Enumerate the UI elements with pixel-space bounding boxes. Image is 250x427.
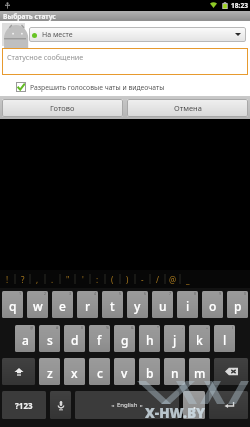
staticText: f [97,332,102,348]
staticText: 3 [69,291,72,296]
button[interactable]: c [89,358,110,385]
staticText: 7 [169,291,172,296]
button[interactable]: ' [75,270,90,288]
staticText: . [51,274,54,285]
button[interactable]: - [135,270,150,288]
staticText: ! [6,274,9,285]
button[interactable]: q [2,291,23,318]
staticText: u [159,298,167,314]
button[interactable]: Разрешить голосовые чаты и видеочаты [16,81,250,93]
button[interactable]: Готово [2,99,123,117]
staticText: g [121,332,129,348]
button[interactable]: y [127,291,148,318]
button[interactable]: m [189,358,210,385]
button[interactable]: w [27,291,48,318]
button[interactable]: o [202,291,223,318]
button[interactable]: ?123 [2,391,46,419]
button[interactable]: ) [120,270,135,288]
staticText: , [36,274,39,285]
staticText: z [47,365,53,381]
staticText: a [22,332,29,348]
staticText: Отмена [174,103,202,113]
button[interactable]: i [177,291,198,318]
staticText: 6 [144,291,147,296]
button[interactable]: Shift [2,358,35,385]
staticText: * [157,325,159,330]
button[interactable]: ! [0,270,15,288]
button[interactable]: k [189,325,210,352]
staticText: o [209,298,217,314]
staticText: c [97,365,103,381]
button[interactable]: " [60,270,75,288]
button[interactable]: v [114,358,135,385]
staticText: 4 [94,291,97,296]
button[interactable]: ? [15,270,30,288]
button[interactable]: Backspace [214,358,248,385]
button[interactable]: p [227,291,248,318]
button[interactable]: d [64,325,85,352]
button[interactable]: a [15,325,35,352]
button[interactable]: b [139,358,160,385]
button[interactable]: x [64,358,85,385]
staticText: / [156,274,159,285]
staticText: 8 [194,291,197,296]
staticText: @ [169,274,177,285]
staticText: 2 [44,291,47,296]
button[interactable]: z [39,358,60,385]
staticText: ( [111,274,114,285]
staticText: x [71,365,78,381]
staticText: # [56,325,59,330]
staticText: b [146,365,154,381]
staticText: " [66,274,70,285]
button[interactable]: n [164,358,185,385]
button[interactable]: Voice input [50,391,71,419]
staticText: w [33,298,43,314]
staticText: 0 [244,291,247,296]
staticText: @ [30,325,34,330]
button[interactable]: r [77,291,98,318]
button[interactable]: s [39,325,60,352]
button[interactable] [2,23,25,46]
staticText: k [196,332,203,348]
button[interactable]: : [90,270,105,288]
button[interactable]: Отмена [127,99,248,117]
button[interactable]: . [45,270,60,288]
staticText: % [106,325,109,330]
staticText: j [173,332,177,348]
button[interactable]: На месте [29,27,246,42]
staticText: ◄ [111,403,115,408]
button[interactable]: Статусное сообщение [2,48,248,75]
staticText: ► [140,403,144,408]
staticText: Готово [50,103,75,113]
staticText: : [96,274,99,285]
button[interactable]: u [152,291,173,318]
button[interactable]: h [139,325,160,352]
button[interactable]: / [150,270,165,288]
button[interactable]: l [214,325,235,352]
button[interactable]: t [102,291,123,318]
staticText: + [206,325,209,330]
button[interactable]: g [114,325,135,352]
button[interactable]: ( [105,270,120,288]
button[interactable]: . [183,391,205,419]
button[interactable]: j [164,325,185,352]
staticText: d [71,332,79,348]
staticText: ' [82,274,84,285]
button[interactable]: @ [165,270,180,288]
staticText: 9 [219,291,222,296]
staticText: _ [186,274,190,285]
button[interactable]: , [30,270,45,288]
staticText: ?123 [15,400,33,411]
staticText: - [141,274,144,285]
staticText: l [223,332,227,348]
staticText: n [171,365,179,381]
staticText: X-HW.BY [145,403,250,427]
button[interactable]: f [89,325,110,352]
staticText: r [85,298,91,314]
staticText: s [47,332,53,348]
button[interactable]: ◄ [75,391,179,419]
button[interactable]: e [52,291,73,318]
button[interactable]: Enter [209,391,248,419]
button[interactable]: _ [180,270,195,288]
staticText: $ [81,325,84,330]
